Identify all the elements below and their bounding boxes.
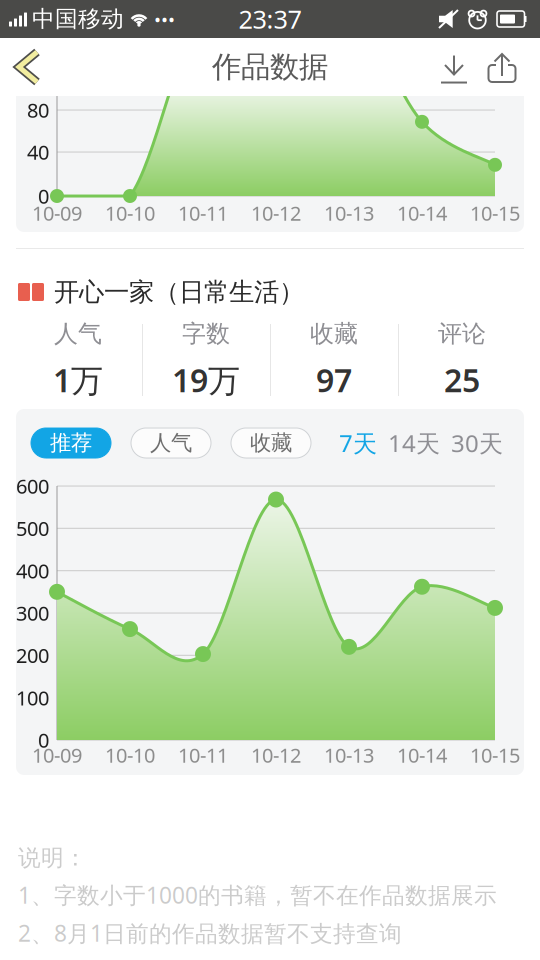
staticText: 30天: [451, 427, 503, 459]
button[interactable]: 14天: [388, 427, 440, 459]
button[interactable]: 推荐: [31, 428, 111, 458]
staticText: 19万: [172, 358, 240, 401]
staticText: 600: [16, 473, 49, 499]
staticText: 字数: [182, 319, 230, 348]
staticText: 人气: [54, 319, 102, 348]
staticText: 10-11: [178, 200, 228, 226]
staticText: •••: [154, 7, 175, 31]
staticText: 中国移动: [32, 5, 124, 33]
staticText: 评论: [438, 319, 486, 348]
staticText: 23:37: [238, 2, 301, 36]
staticText: 10-13: [324, 742, 374, 768]
staticText: 7天: [339, 427, 377, 459]
staticText: 10-11: [178, 742, 228, 768]
staticText: 10-10: [105, 200, 155, 226]
staticText: 10-12: [251, 742, 301, 768]
staticText: 400: [16, 557, 49, 584]
staticText: 开心一家（日常生活）: [54, 276, 304, 307]
staticText: 1万: [53, 358, 103, 401]
button[interactable]: 30天: [451, 427, 503, 459]
staticText: 收藏: [310, 319, 358, 348]
staticText: 100: [16, 684, 49, 711]
staticText: 人气: [150, 430, 192, 456]
staticText: 2、8月1日前的作品数据暂不支持查询: [18, 918, 402, 948]
button[interactable]: 分享: [478, 38, 526, 96]
button[interactable]: 返回: [0, 38, 56, 96]
button[interactable]: 人气: [131, 428, 211, 458]
staticText: 0: [38, 183, 49, 209]
staticText: 推荐: [50, 430, 92, 456]
staticText: 500: [16, 515, 49, 542]
button[interactable]: 下载: [430, 38, 478, 96]
staticText: 10-15: [470, 742, 520, 768]
staticText: 作品数据: [212, 49, 328, 85]
staticText: 说明：: [18, 844, 87, 872]
staticText: 0: [38, 727, 49, 753]
staticText: 10-13: [324, 200, 374, 226]
staticText: 80: [27, 97, 49, 123]
staticText: 10-09: [32, 200, 82, 226]
staticText: 25: [444, 358, 480, 401]
button[interactable]: 收藏: [231, 428, 311, 458]
staticText: 40: [27, 139, 49, 165]
staticText: 10-12: [251, 200, 301, 226]
staticText: 97: [316, 358, 352, 401]
staticText: 10-10: [105, 742, 155, 768]
staticText: 收藏: [250, 430, 292, 456]
staticText: 10-14: [397, 742, 447, 768]
staticText: 14天: [388, 427, 440, 459]
button[interactable]: 7天: [339, 427, 377, 459]
staticText: 10-15: [470, 200, 520, 226]
staticText: 200: [16, 642, 49, 669]
staticText: 1、字数小于1000的书籍，暂不在作品数据展示: [18, 880, 497, 910]
staticText: 300: [16, 600, 49, 626]
staticText: 10-14: [397, 200, 447, 226]
staticText: 10-09: [32, 742, 82, 768]
